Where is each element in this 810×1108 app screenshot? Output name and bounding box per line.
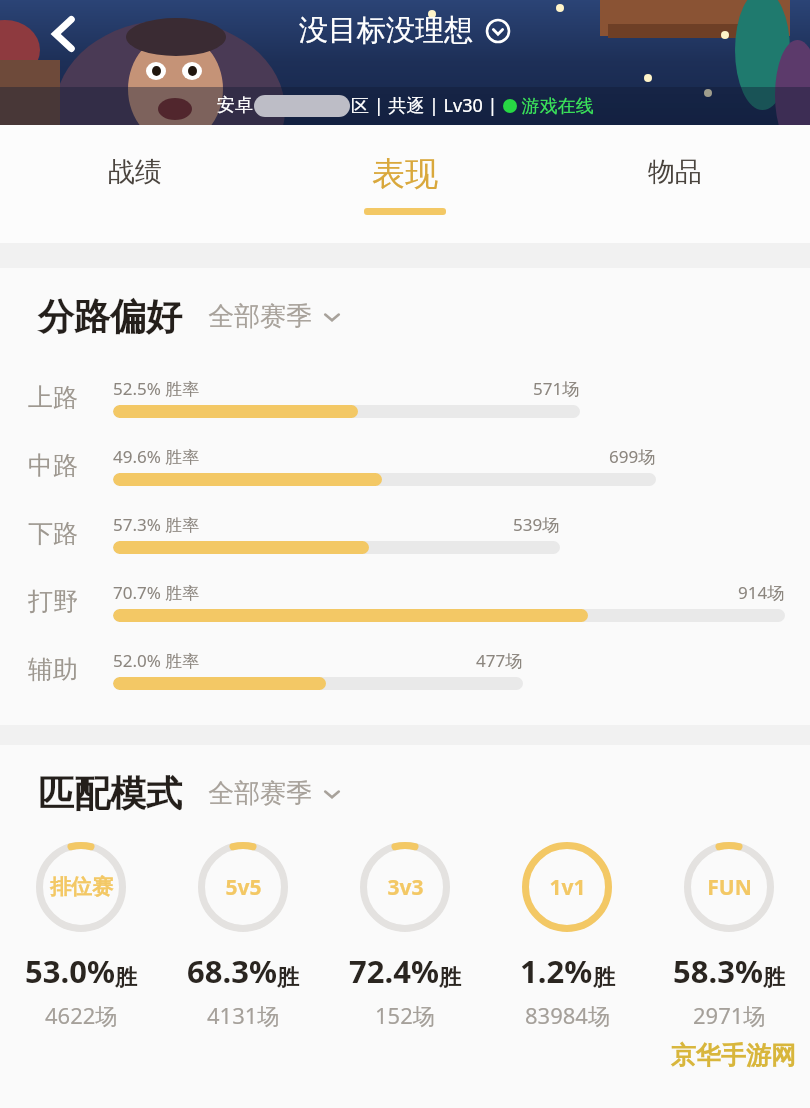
staticText: 83984场 bbox=[525, 1000, 610, 1030]
staticText: 下路 bbox=[28, 518, 113, 549]
button[interactable]: 5v5 bbox=[162, 842, 324, 1030]
staticText: FUN bbox=[707, 873, 752, 902]
button[interactable]: 全部赛季 bbox=[208, 300, 342, 333]
button[interactable]: FUN bbox=[648, 842, 810, 1030]
staticText: 539场 bbox=[513, 513, 560, 536]
staticText: 1v1 bbox=[549, 873, 586, 902]
staticText: 没目标没理想 bbox=[299, 12, 473, 49]
staticText: 物品 bbox=[648, 155, 702, 189]
button[interactable]: 物品 bbox=[540, 125, 810, 243]
staticText: 胜 bbox=[277, 964, 299, 992]
staticText: 安卓 bbox=[217, 94, 253, 117]
staticText: 排位赛 bbox=[50, 874, 113, 900]
button[interactable]: 全部赛季 bbox=[208, 777, 342, 810]
button[interactable]: 没目标没理想 bbox=[299, 12, 511, 49]
staticText: 胜 bbox=[115, 964, 137, 992]
button[interactable]: Back bbox=[38, 8, 90, 60]
button[interactable]: 3v3 bbox=[324, 842, 486, 1030]
button[interactable]: 排位赛 bbox=[0, 842, 162, 1030]
staticText: 辅助 bbox=[28, 654, 113, 685]
button[interactable]: 辅助 bbox=[0, 635, 810, 703]
staticText: 699场 bbox=[609, 445, 656, 468]
staticText: 分路偏好 bbox=[38, 294, 182, 339]
button[interactable]: 表现 bbox=[270, 125, 540, 243]
staticText: 72.4% bbox=[349, 950, 439, 992]
staticText: 477场 bbox=[476, 649, 523, 672]
staticText: 70.7% 胜率 bbox=[113, 581, 200, 604]
staticText: 49.6% 胜率 bbox=[113, 445, 200, 468]
staticText: 匹配模式 bbox=[38, 771, 182, 816]
button[interactable]: 上路 bbox=[0, 363, 810, 431]
staticText: 2971场 bbox=[693, 1000, 766, 1030]
staticText: 3v3 bbox=[387, 873, 424, 902]
button[interactable]: 下路 bbox=[0, 499, 810, 567]
staticText: 152场 bbox=[375, 1000, 435, 1030]
staticText: 1.2% bbox=[520, 950, 593, 992]
staticText: 57.3% 胜率 bbox=[113, 513, 200, 536]
staticText: 914场 bbox=[738, 581, 785, 604]
button[interactable]: 打野 bbox=[0, 567, 810, 635]
staticText: 打野 bbox=[28, 586, 113, 617]
staticText: 52.5% 胜率 bbox=[113, 377, 200, 400]
staticText: 4622场 bbox=[45, 1000, 118, 1030]
staticText: 58.3% bbox=[673, 950, 763, 992]
staticText: 京华手游网 bbox=[671, 1040, 796, 1071]
staticText: 游戏在线 bbox=[517, 93, 594, 118]
staticText: 上路 bbox=[28, 382, 113, 413]
staticText: 53.0% bbox=[25, 950, 115, 992]
staticText: 战绩 bbox=[108, 155, 162, 189]
staticText: 胜 bbox=[763, 964, 785, 992]
staticText: 全部赛季 bbox=[208, 777, 312, 810]
staticText: 表现 bbox=[372, 153, 438, 195]
button[interactable]: 1v1 bbox=[486, 842, 648, 1030]
staticText: 全部赛季 bbox=[208, 300, 312, 333]
staticText: 52.0% 胜率 bbox=[113, 649, 200, 672]
staticText: 胜 bbox=[439, 964, 461, 992]
staticText: 571场 bbox=[533, 377, 580, 400]
staticText: 68.3% bbox=[187, 950, 277, 992]
button[interactable]: 中路 bbox=[0, 431, 810, 499]
staticText: 中路 bbox=[28, 450, 113, 481]
staticText: 区 | 共逐 | Lv30 | bbox=[351, 93, 503, 118]
staticText: 4131场 bbox=[207, 1000, 280, 1030]
button[interactable]: 战绩 bbox=[0, 125, 270, 243]
staticText: 胜 bbox=[593, 964, 615, 992]
staticText: 5v5 bbox=[225, 873, 262, 902]
